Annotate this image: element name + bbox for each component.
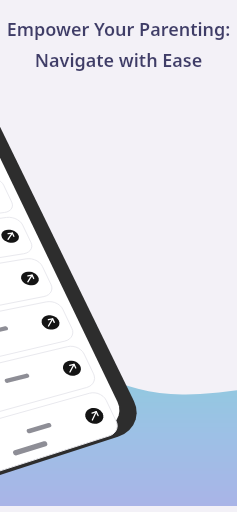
staticText: Empower Your Parenting: Navigate with Ea… bbox=[0, 17, 237, 72]
